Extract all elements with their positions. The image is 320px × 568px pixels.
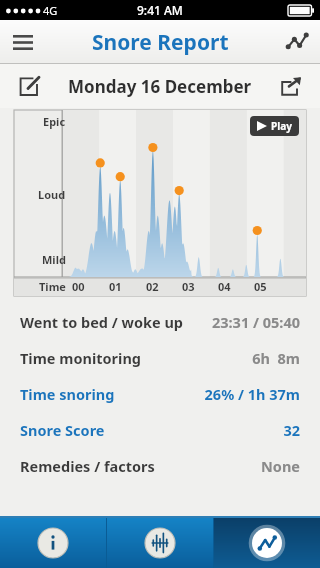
- button[interactable]: Recordings: [107, 518, 213, 568]
- staticText: Epic: [43, 114, 66, 129]
- button[interactable]: Info: [0, 518, 106, 568]
- staticText: 23:31 / 05:40: [211, 312, 300, 332]
- staticText: 26% / 1h 37m: [204, 384, 300, 404]
- staticText: 01: [109, 279, 122, 294]
- staticText: Play: [271, 119, 292, 133]
- staticText: Monday 16 December: [68, 75, 252, 98]
- staticText: 02: [146, 279, 159, 294]
- staticText: 6h 8m: [252, 348, 300, 368]
- staticText: Time snoring: [20, 384, 115, 404]
- staticText: 05: [254, 279, 267, 294]
- staticText: Loud: [38, 187, 66, 202]
- button[interactable]: Report: [214, 518, 320, 568]
- staticText: None: [261, 456, 300, 476]
- staticText: 9:41 AM: [137, 2, 183, 18]
- staticText: 04: [218, 279, 231, 294]
- staticText: Time monitoring: [20, 348, 141, 368]
- staticText: 00: [72, 279, 85, 294]
- button[interactable]: Went to bed / woke up: [0, 304, 320, 340]
- button[interactable]: Play: [250, 116, 299, 136]
- button[interactable]: Time snoring: [0, 376, 320, 412]
- button[interactable]: Time monitoring: [0, 340, 320, 376]
- staticText: 32: [283, 420, 300, 440]
- staticText: Went to bed / woke up: [20, 312, 184, 332]
- staticText: Mild: [42, 252, 66, 267]
- staticText: 4G: [43, 3, 58, 18]
- button[interactable]: Trends: [274, 20, 320, 64]
- staticText: Snore Report: [92, 28, 229, 57]
- button[interactable]: Menu: [0, 20, 46, 64]
- staticText: 03: [182, 279, 195, 294]
- staticText: Time: [39, 279, 66, 294]
- staticText: Remedies / factors: [20, 456, 155, 476]
- button[interactable]: Remedies / factors: [0, 448, 320, 484]
- staticText: Snore Score: [20, 420, 105, 440]
- button[interactable]: Share: [274, 69, 308, 103]
- button[interactable]: Edit: [12, 69, 46, 103]
- button[interactable]: Snore Score: [0, 412, 320, 448]
